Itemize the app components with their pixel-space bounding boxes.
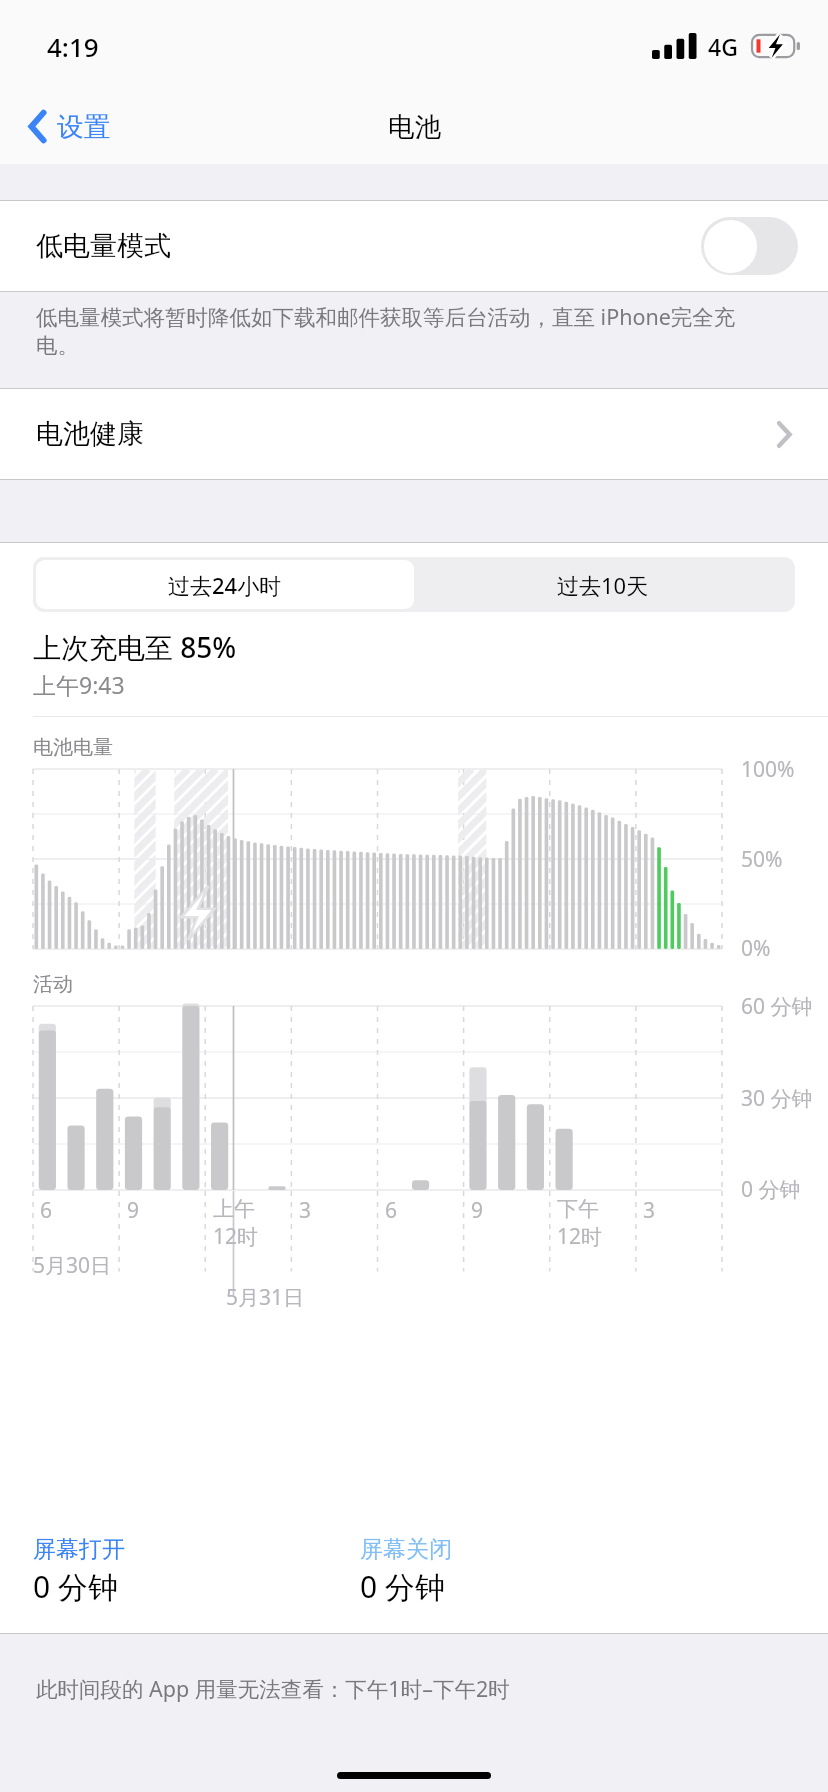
staticText: 低电量模式将暂时降低如下载和邮件获取等后台活动，直至 iPhone完全充电。: [36, 302, 772, 359]
staticText: 0 分钟: [741, 1175, 801, 1204]
staticText: 设置: [57, 110, 110, 143]
staticText: 9: [471, 1196, 484, 1225]
staticText: 3: [643, 1196, 656, 1225]
staticText: 上次充电至 85%: [33, 628, 237, 666]
staticText: 屏幕关闭: [360, 1535, 452, 1564]
other: 信号: [652, 33, 702, 59]
staticText: 电池健康: [36, 417, 144, 451]
staticText: 6: [40, 1196, 53, 1225]
button[interactable]: 设置: [18, 100, 120, 153]
staticText: 过去24小时: [168, 570, 282, 600]
button[interactable]: 低电量模式开关: [701, 217, 798, 275]
staticText: 50%: [741, 845, 783, 874]
staticText: 0%: [741, 934, 771, 963]
staticText: 活动: [33, 972, 73, 997]
staticText: 100%: [741, 755, 795, 784]
button[interactable]: 过去10天: [414, 560, 792, 609]
button[interactable]: 过去24小时: [36, 560, 414, 609]
other: 电池充电中: [752, 33, 800, 59]
staticText: 电池: [388, 110, 441, 143]
staticText: 上午 12时: [213, 1196, 259, 1251]
staticText: 低电量模式: [36, 229, 171, 263]
staticText: 9: [127, 1196, 140, 1225]
staticText: 6: [385, 1196, 398, 1225]
staticText: 3: [299, 1196, 312, 1225]
staticText: 0 分钟: [33, 1566, 118, 1607]
staticText: 4:19: [47, 29, 99, 64]
staticText: 过去10天: [557, 570, 649, 600]
staticText: 0 分钟: [360, 1566, 445, 1607]
staticText: 4G: [708, 31, 738, 62]
staticText: 电池电量: [33, 735, 113, 760]
staticText: 下午 12时: [557, 1196, 603, 1251]
button[interactable]: 屏幕打开: [33, 1535, 360, 1607]
staticText: 60 分钟: [741, 992, 813, 1021]
button[interactable]: 低电量模式: [0, 201, 828, 291]
staticText: 5月30日: [33, 1251, 112, 1280]
staticText: 屏幕打开: [33, 1535, 125, 1564]
button[interactable]: 电池健康: [0, 389, 828, 479]
staticText: 5月31日: [226, 1283, 305, 1312]
staticText: 此时间段的 App 用量无法查看：下午1时–下午2时: [36, 1674, 510, 1703]
staticText: 上午9:43: [33, 669, 125, 700]
button[interactable]: 屏幕关闭: [360, 1535, 452, 1607]
staticText: 30 分钟: [741, 1084, 813, 1113]
